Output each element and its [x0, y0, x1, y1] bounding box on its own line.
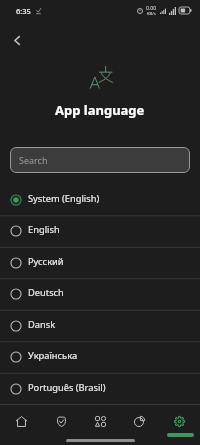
button[interactable]: Português (Brasil) — [0, 373, 200, 405]
button[interactable]: Українська — [0, 341, 200, 373]
button[interactable]: Settings — [161, 405, 197, 445]
button[interactable]: Back — [5, 29, 28, 52]
button[interactable]: English — [0, 215, 200, 247]
staticText: Українська — [28, 349, 78, 362]
button[interactable]: Protection — [43, 405, 79, 445]
staticText: 6:35 — [16, 6, 31, 16]
button[interactable]: System (English) — [0, 184, 200, 216]
staticText: KB/s — [147, 11, 156, 17]
button[interactable]: Русский — [0, 247, 200, 279]
button[interactable]: Apps — [82, 405, 118, 445]
button[interactable]: Dansk — [0, 310, 200, 342]
button[interactable]: Home — [3, 405, 39, 445]
button[interactable]: Statistics — [121, 405, 157, 445]
staticText: App language — [55, 101, 145, 119]
staticText: System (English) — [28, 192, 100, 205]
staticText: Русский — [28, 255, 64, 268]
staticText: Dansk — [28, 318, 56, 331]
button[interactable]: Deutsch — [0, 278, 200, 310]
staticText: Português (Brasil) — [28, 381, 106, 394]
staticText: 0.00 — [146, 4, 157, 11]
staticText: Search — [19, 154, 48, 166]
button[interactable]: Search — [10, 147, 190, 173]
staticText: English — [28, 223, 60, 236]
staticText: Deutsch — [28, 286, 64, 299]
